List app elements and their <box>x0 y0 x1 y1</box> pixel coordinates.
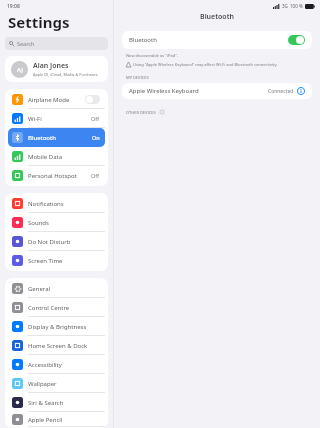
staticText: Off <box>91 172 100 179</box>
staticText: Apple ID, iCloud, Media & Purchases <box>33 72 98 77</box>
button[interactable]: Control Centre <box>8 298 105 317</box>
staticText: OTHER DEVICES <box>126 110 156 115</box>
button[interactable]: Apple Wireless Keyboard <box>122 83 312 99</box>
staticText: On <box>92 134 100 141</box>
staticText: Using "Apple Wireless Keyboard" may affe… <box>133 62 278 67</box>
staticText: 100 % <box>290 3 303 9</box>
staticText: Home Screen & Dock <box>28 342 88 350</box>
staticText: Connected <box>268 88 294 95</box>
staticText: Control Centre <box>28 304 70 312</box>
button[interactable]: Wi-Fi <box>8 109 105 128</box>
staticText: Display & Brightness <box>28 323 87 331</box>
button[interactable]: Search <box>5 37 108 50</box>
staticText: Bluetooth <box>28 134 56 142</box>
staticText: AJ <box>17 66 23 74</box>
button[interactable]: Apple Pencil <box>8 412 105 427</box>
button[interactable]: General <box>8 279 105 298</box>
staticText: Apple Pencil <box>28 416 63 424</box>
button[interactable]: Personal Hotspot <box>8 166 105 185</box>
button[interactable]: Mobile Data <box>8 147 105 166</box>
staticText: Bluetooth <box>129 36 157 44</box>
staticText: Wi-Fi <box>28 115 42 123</box>
button[interactable]: Notifications <box>8 194 105 213</box>
staticText: Personal Hotspot <box>28 172 77 180</box>
staticText: Notifications <box>28 200 64 208</box>
staticText: Accessibility <box>28 361 62 369</box>
staticText: General <box>28 285 51 293</box>
staticText: Search <box>17 40 35 47</box>
staticText: Alan Jones <box>33 61 69 71</box>
button[interactable]: Home Screen & Dock <box>8 336 105 355</box>
staticText: Airplane Mode <box>28 96 70 104</box>
staticText: Mobile Data <box>28 153 63 161</box>
staticText: 3G <box>282 3 288 9</box>
button[interactable]: Sounds <box>8 213 105 232</box>
button[interactable]: More Info <box>297 87 305 95</box>
staticText: 19:08 <box>7 3 20 10</box>
staticText: Settings <box>8 12 70 32</box>
button[interactable]: Screen Time <box>8 251 105 270</box>
button[interactable]: Bluetooth <box>122 31 312 49</box>
button[interactable]: Display & Brightness <box>8 317 105 336</box>
staticText: Now discoverable as "iPad". <box>126 53 178 58</box>
staticText: Wallpaper <box>28 380 57 388</box>
staticText: Apple Wireless Keyboard <box>129 87 199 95</box>
button[interactable] <box>288 35 305 45</box>
button[interactable]: Accessibility <box>8 355 105 374</box>
button[interactable]: Wallpaper <box>8 374 105 393</box>
button[interactable]: Bluetooth <box>8 128 105 147</box>
staticText: Screen Time <box>28 257 63 265</box>
button[interactable]: Airplane Mode <box>8 90 105 109</box>
staticText: Do Not Disturb <box>28 238 71 246</box>
staticText: MY DEVICES <box>126 75 149 80</box>
button[interactable]: Siri & Search <box>8 393 105 412</box>
button[interactable] <box>85 95 100 104</box>
button[interactable]: AJ <box>5 56 108 82</box>
staticText: Off <box>91 115 100 122</box>
button[interactable]: Do Not Disturb <box>8 232 105 251</box>
staticText: Siri & Search <box>28 399 64 407</box>
staticText: Bluetooth <box>114 12 320 22</box>
staticText: Sounds <box>28 219 49 227</box>
